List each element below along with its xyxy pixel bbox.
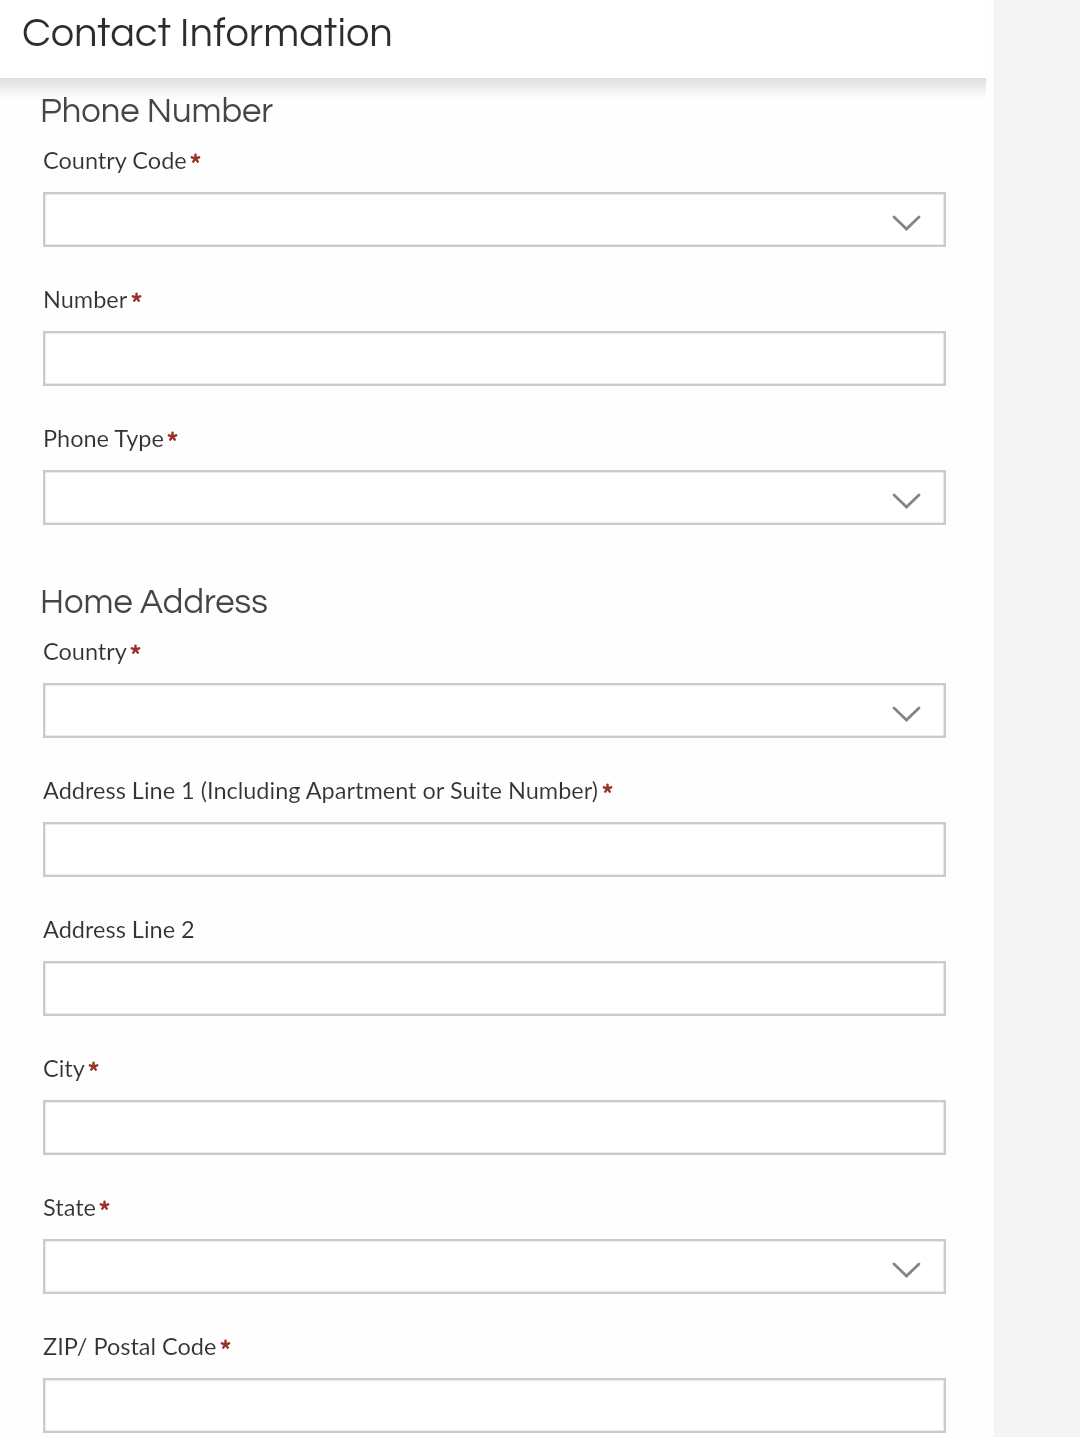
staticText: Address Line 2 — [43, 915, 195, 943]
button[interactable]: Number — [43, 285, 142, 313]
staticText: Home Address — [40, 585, 268, 621]
button[interactable]: Country — [43, 637, 141, 665]
button[interactable]: ZIP/ Postal Code, text field — [43, 1378, 946, 1433]
other: Open dropdown — [894, 217, 919, 229]
button[interactable]: ZIP/ Postal Code — [43, 1332, 231, 1360]
staticText: Country — [43, 637, 127, 665]
button[interactable]: Address Line 2 — [43, 915, 195, 943]
button[interactable]: Contact Information — [0, 0, 986, 78]
button[interactable]: Address Line 1 (Including Apartment or S… — [43, 776, 613, 804]
button[interactable]: Country Code, select — [43, 192, 946, 247]
staticText: Country Code — [43, 146, 187, 174]
staticText: ZIP/ Postal Code — [43, 1332, 217, 1360]
staticText: Contact Information — [22, 12, 393, 55]
other: Open dropdown — [894, 495, 919, 507]
staticText: City — [43, 1054, 85, 1082]
staticText: Address Line 1 (Including Apartment or S… — [43, 776, 599, 804]
button[interactable]: Address Line 2, text field — [43, 961, 946, 1016]
button[interactable]: Country, select — [43, 683, 946, 738]
staticText: Number — [43, 285, 128, 313]
staticText: Phone Type — [43, 424, 164, 452]
button[interactable]: Address Line 1 (Including Apartment or S… — [43, 822, 946, 877]
button[interactable]: State — [43, 1193, 110, 1221]
button[interactable]: City — [43, 1054, 99, 1082]
button[interactable]: Number, text field — [43, 331, 946, 386]
staticText: State — [43, 1193, 96, 1221]
button[interactable]: City, text field — [43, 1100, 946, 1155]
staticText: Phone Number — [40, 94, 274, 130]
other: Open dropdown — [894, 1264, 919, 1276]
button[interactable]: State, select — [43, 1239, 946, 1294]
button[interactable]: Phone Type, select — [43, 470, 946, 525]
other: Open dropdown — [894, 708, 919, 720]
button[interactable]: Country Code — [43, 146, 201, 174]
button[interactable]: Phone Type — [43, 424, 178, 452]
